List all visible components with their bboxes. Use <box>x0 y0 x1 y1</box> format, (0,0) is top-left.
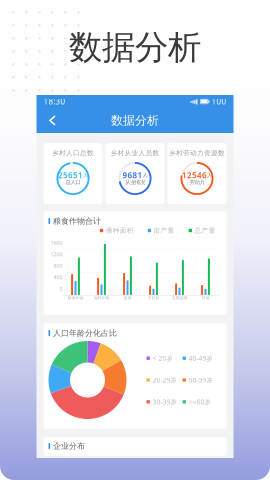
staticText: 瓜果蔬菜 <box>171 295 187 300</box>
staticText: 数据分析 <box>69 27 201 68</box>
staticText: 人 <box>83 172 88 179</box>
staticText: 人 <box>142 172 147 179</box>
staticText: < 20岁 <box>152 354 173 363</box>
staticText: 乡村劳动力资源数 <box>169 149 225 157</box>
staticText: 25651 <box>58 170 83 180</box>
staticText: 50-59岁 <box>188 376 213 384</box>
staticText: 9681 <box>122 170 142 180</box>
staticText: 人 <box>207 172 212 179</box>
staticText: 粮食作物合计 <box>53 216 101 226</box>
staticText: 0 <box>59 285 62 292</box>
staticText: 乡村人口总数 <box>52 149 94 157</box>
staticText: 数据分析 <box>111 113 159 128</box>
staticText: 1600 <box>50 239 62 246</box>
staticText: 总产量 <box>194 226 215 235</box>
staticText: 100 <box>211 96 226 107</box>
staticText: 人口年龄分化占比 <box>53 328 117 338</box>
staticText: 40-49岁 <box>188 354 213 363</box>
button[interactable]: Back <box>41 108 63 132</box>
staticText: 总人口 <box>65 179 80 186</box>
staticText: 30-39岁 <box>152 397 177 406</box>
staticText: 播种面积 <box>106 226 134 235</box>
staticText: 企业分布 <box>53 441 85 451</box>
staticText: 12546 <box>182 170 207 180</box>
staticText: 20-29岁 <box>152 376 177 384</box>
staticText: >=60岁 <box>188 397 211 406</box>
staticText: 800 <box>53 262 62 269</box>
staticText: 400 <box>53 274 62 281</box>
staticText: 乡村从业人员数 <box>110 149 159 157</box>
staticText: 从业情况 <box>125 179 145 186</box>
staticText: 1200 <box>50 251 62 258</box>
staticText: 亩产量 <box>154 226 175 235</box>
staticText: 粮食作物 <box>67 295 83 300</box>
staticText: 油料作物 <box>93 295 109 300</box>
staticText: 蔬菜 <box>123 295 131 300</box>
staticText: 中药材 <box>147 295 159 300</box>
staticText: 其他 <box>201 295 209 300</box>
staticText: 劳动力 <box>189 179 204 186</box>
staticText: 18:30 <box>43 96 65 107</box>
